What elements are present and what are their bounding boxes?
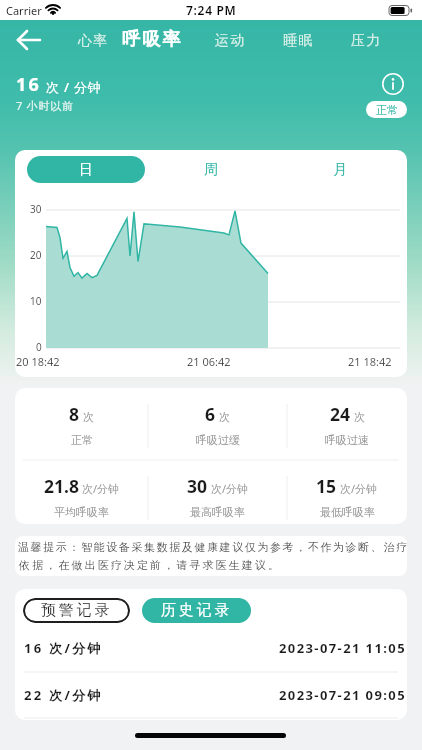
staticText: 最高呼吸率	[190, 505, 245, 519]
button[interactable]	[8, 25, 50, 55]
staticText: 次 / 分钟	[46, 78, 102, 96]
staticText: 22 次/分钟	[24, 686, 103, 704]
staticText: 历史记录	[161, 601, 233, 620]
staticText: 8	[69, 402, 80, 426]
staticText: 正常	[71, 433, 93, 447]
staticText: 次	[83, 410, 94, 424]
staticText: 24	[330, 402, 351, 426]
staticText: 次/分钟	[82, 481, 120, 496]
button[interactable]: 月	[281, 156, 399, 183]
staticText: 呼吸过缓	[196, 433, 240, 447]
staticText: 周	[204, 161, 218, 179]
staticText: 15	[316, 474, 337, 498]
staticText: 最低呼吸率	[320, 505, 375, 519]
staticText: 21 18:42	[348, 354, 392, 369]
button[interactable]: 历史记录	[142, 598, 251, 623]
button[interactable]: 心率	[78, 32, 109, 50]
staticText: 2023-07-21 11:05	[279, 639, 406, 657]
staticText: 2023-07-21 09:05	[279, 686, 406, 704]
staticText: Carrier	[6, 3, 42, 18]
staticText: 呼吸过速	[325, 433, 369, 447]
button[interactable]: 呼吸率	[122, 28, 183, 51]
staticText: 次/分钟	[211, 481, 249, 496]
button[interactable]: 16 次/分钟	[24, 639, 406, 657]
staticText: 月	[333, 161, 347, 179]
button[interactable]: 22 次/分钟	[24, 686, 406, 704]
button[interactable]: 日	[27, 156, 145, 183]
staticText: 7 小时以前	[16, 98, 74, 113]
staticText: 10	[30, 294, 42, 308]
staticText: 次/分钟	[340, 481, 378, 496]
staticText: 平均呼吸率	[54, 505, 109, 519]
staticText: 正常	[376, 103, 398, 117]
staticText: 预警记录	[41, 601, 113, 620]
staticText: 0	[36, 340, 42, 354]
button[interactable]: 压力	[351, 32, 382, 50]
staticText: 30	[187, 474, 208, 498]
staticText: 次	[219, 410, 230, 424]
button[interactable]: 周	[152, 156, 270, 183]
staticText: 16	[16, 72, 41, 97]
staticText: 21 06:42	[187, 354, 231, 369]
button[interactable]	[381, 72, 405, 96]
staticText: 7:24 PM	[186, 2, 237, 18]
staticText: 6	[205, 402, 216, 426]
staticText: 20 18:42	[16, 354, 60, 369]
staticText: 21.8	[44, 474, 79, 498]
staticText: 日	[79, 161, 93, 179]
staticText: 20	[30, 248, 42, 262]
button[interactable]: 预警记录	[23, 598, 130, 623]
staticText: 30	[30, 202, 42, 216]
staticText: 16 次/分钟	[24, 639, 103, 657]
staticText: 温馨提示：智能设备采集数据及健康建议仅为参考，不作为诊断、治疗	[18, 540, 407, 554]
button[interactable]: 睡眠	[283, 32, 314, 50]
button[interactable]: 运动	[215, 32, 246, 50]
staticText: 次	[354, 410, 365, 424]
button[interactable]: 正常	[366, 101, 407, 118]
staticText: 依据，在做出医疗决定前，请寻求医生建议。	[18, 558, 280, 572]
